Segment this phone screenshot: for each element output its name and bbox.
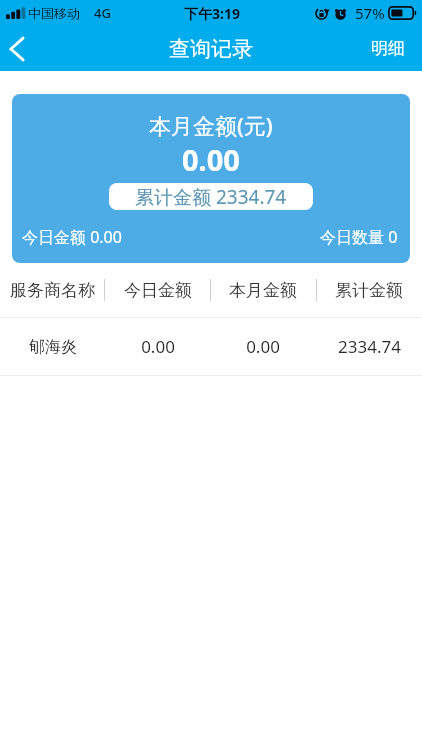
staticText: 累计金额 2334.74 [135, 184, 287, 210]
staticText: 今日数量 0 [320, 226, 398, 248]
staticText: 下午3:19 [184, 4, 240, 23]
staticText: 今日金额 0.00 [22, 226, 122, 248]
staticText: 中国移动 [28, 5, 80, 21]
staticText: 今日金额 [124, 280, 192, 301]
other: Alarm [334, 7, 347, 20]
button[interactable]: 郇海炎 [0, 318, 422, 375]
staticText: 查询记录 [169, 36, 253, 62]
button[interactable]: Back [0, 26, 34, 71]
staticText: 本月金额(元) [149, 110, 273, 140]
staticText: 服务商名称 [10, 280, 95, 301]
staticText: 57% [355, 3, 385, 23]
staticText: 本月金额 [229, 280, 297, 301]
other: Rotation lock [315, 7, 328, 20]
button[interactable]: 累计金额 2334.74 [109, 183, 313, 210]
staticText: 2334.74 [338, 335, 401, 358]
staticText: 4G [94, 4, 111, 22]
staticText: 明细 [371, 38, 405, 59]
staticText: 0.00 [141, 335, 175, 358]
staticText: 0.00 [246, 335, 280, 358]
staticText: 0.00 [182, 140, 240, 179]
staticText: 郇海炎 [29, 337, 77, 357]
staticText: 累计金额 [335, 280, 403, 301]
button[interactable]: 明细 [351, 26, 422, 71]
